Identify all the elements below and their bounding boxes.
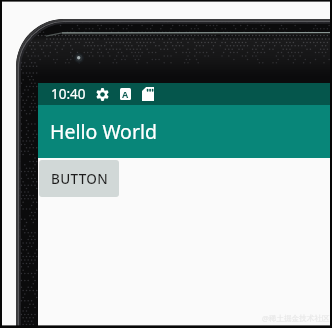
other: SD card: [142, 87, 154, 101]
staticText: A: [122, 88, 129, 100]
staticText: BUTTON: [51, 170, 108, 188]
staticText: Hello World: [50, 118, 157, 145]
other: Front camera: [74, 53, 84, 63]
staticText: @稀土掘金技术社区: [262, 313, 330, 323]
staticText: 10:40: [51, 85, 86, 103]
other: Settings: [96, 88, 109, 101]
button[interactable]: BUTTON: [39, 160, 119, 197]
